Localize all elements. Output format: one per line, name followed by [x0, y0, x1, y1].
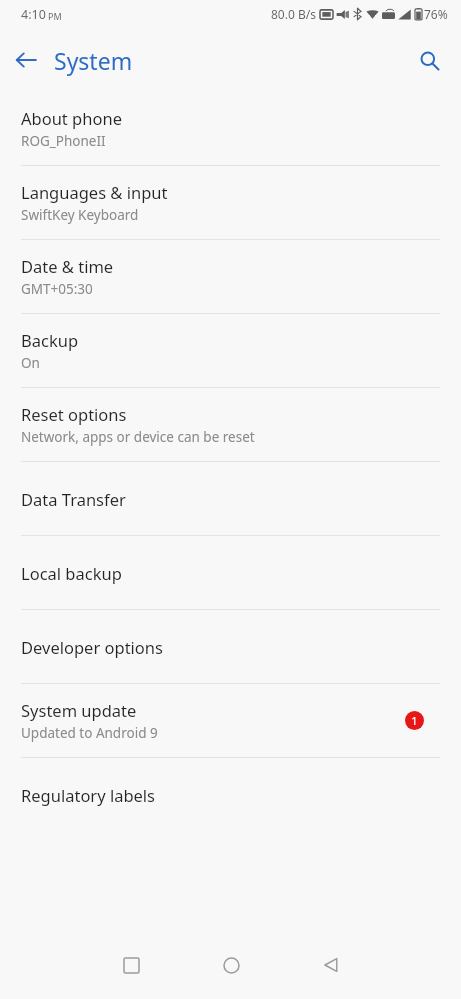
button[interactable]: System update: [0, 684, 461, 757]
staticText: Data Transfer: [21, 488, 126, 510]
staticText: Updated to Android 9: [21, 724, 158, 742]
staticText: On: [21, 354, 40, 372]
button[interactable]: Home: [181, 941, 281, 989]
button[interactable]: Date & time: [0, 240, 461, 313]
button[interactable]: About phone: [0, 92, 461, 165]
staticText: 4:10: [21, 6, 46, 23]
button[interactable]: Back: [281, 941, 381, 989]
staticText: ROG_PhoneII: [21, 132, 106, 150]
button[interactable]: Data Transfer: [0, 462, 461, 535]
button[interactable]: Recents: [81, 941, 181, 989]
staticText: 1: [411, 713, 418, 728]
staticText: Date & time: [21, 255, 114, 277]
staticText: Languages & input: [21, 181, 168, 203]
staticText: Backup: [21, 329, 79, 351]
staticText: System: [54, 45, 133, 76]
button[interactable]: Local backup: [0, 536, 461, 609]
staticText: SwiftKey Keyboard: [21, 206, 139, 224]
button[interactable]: Backup: [0, 314, 461, 387]
staticText: PM: [48, 10, 62, 22]
staticText: 76%: [424, 6, 448, 22]
button[interactable]: Regulatory labels: [0, 758, 461, 831]
staticText: Reset options: [21, 403, 127, 425]
staticText: Network, apps or device can be reset: [21, 428, 255, 446]
staticText: GMT+05:30: [21, 280, 93, 298]
staticText: Local backup: [21, 562, 122, 584]
button[interactable]: Reset options: [0, 388, 461, 461]
staticText: 80.0 B/s: [271, 6, 316, 22]
staticText: Regulatory labels: [21, 784, 156, 806]
staticText: Developer options: [21, 636, 163, 658]
staticText: System update: [21, 699, 137, 721]
staticText: About phone: [21, 107, 122, 129]
button[interactable]: Search: [403, 34, 455, 86]
button[interactable]: Developer options: [0, 610, 461, 683]
button[interactable]: Languages & input: [0, 166, 461, 239]
button[interactable]: Back: [0, 34, 52, 86]
